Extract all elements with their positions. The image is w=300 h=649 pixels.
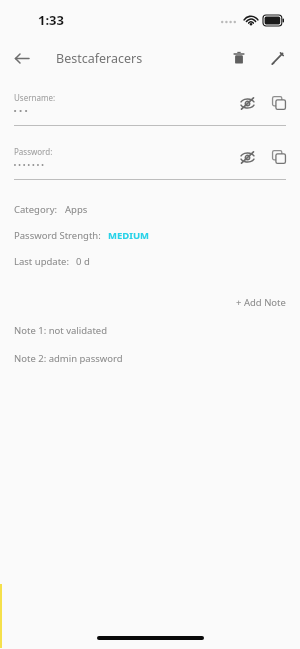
button[interactable]: Category: bbox=[0, 202, 300, 217]
staticText: MEDIUM bbox=[108, 229, 150, 242]
staticText: Note 2: admin password bbox=[14, 352, 123, 365]
staticText: Username: bbox=[14, 92, 56, 103]
button[interactable]: Delete bbox=[224, 43, 254, 73]
staticText: Last update: bbox=[14, 255, 69, 268]
button[interactable]: Copy username bbox=[264, 88, 294, 118]
button[interactable]: Back bbox=[8, 45, 34, 71]
staticText: Bestcaferacers bbox=[56, 50, 143, 67]
button[interactable]: Edit bbox=[262, 43, 292, 73]
staticText: Note 1: not validated bbox=[14, 324, 108, 337]
staticText: 1:33 bbox=[38, 11, 64, 29]
button[interactable]: Show username bbox=[232, 88, 262, 118]
staticText: + Add Note bbox=[236, 296, 286, 309]
staticText: Category: bbox=[14, 203, 58, 216]
button[interactable]: Password Strength: bbox=[0, 228, 300, 243]
staticText: Apps bbox=[65, 203, 88, 216]
staticText: 0 d bbox=[76, 255, 90, 268]
button[interactable]: + Add Note bbox=[222, 292, 300, 313]
button[interactable]: Copy password bbox=[264, 142, 294, 172]
button[interactable]: Last update: bbox=[0, 254, 300, 269]
button[interactable]: Show password bbox=[232, 142, 262, 172]
staticText: Password: bbox=[14, 146, 53, 157]
button[interactable]: Note 1: not validated bbox=[0, 322, 300, 339]
button[interactable]: Note 2: admin password bbox=[0, 350, 300, 367]
staticText: Password Strength: bbox=[14, 229, 101, 242]
